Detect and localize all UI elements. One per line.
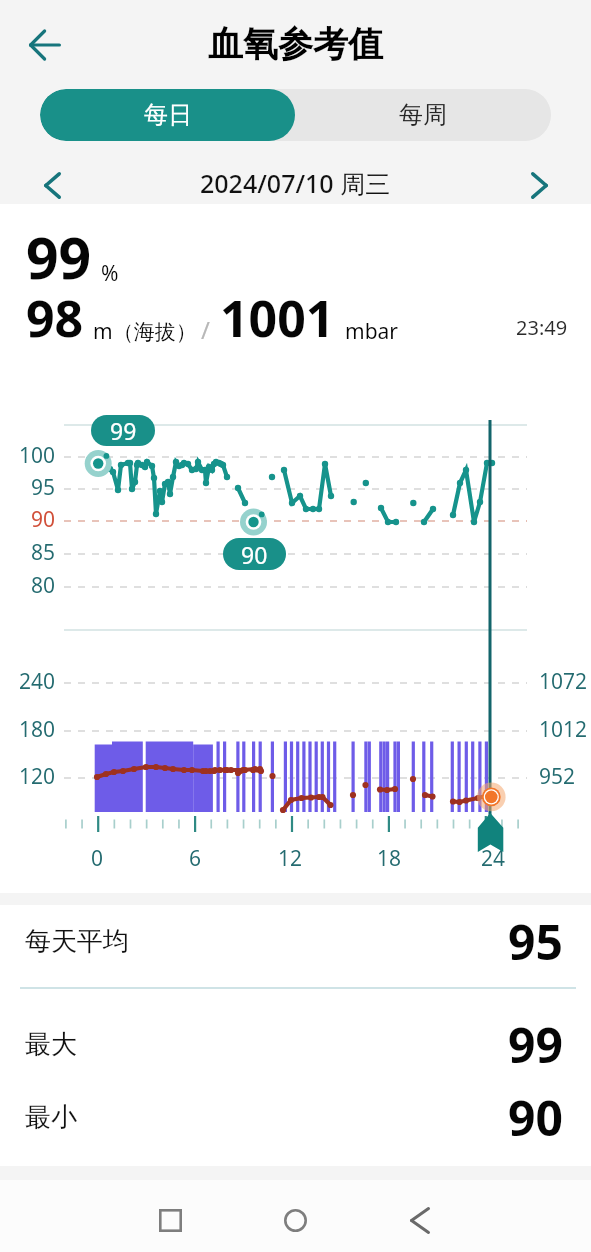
button[interactable]: 每日 (40, 89, 295, 141)
staticText: 24 (481, 844, 506, 873)
staticText: % (101, 259, 119, 288)
button[interactable]: Next day (513, 159, 565, 211)
staticText: 952 (539, 762, 576, 791)
staticText: 95 (31, 473, 56, 502)
button[interactable]: Home (265, 1190, 325, 1250)
staticText: 0 (91, 844, 104, 873)
staticText: 2024/07/10 周三 (200, 166, 391, 200)
button[interactable]: 最小 (0, 1081, 591, 1154)
button[interactable]: Back (13, 13, 77, 77)
staticText: / (201, 313, 210, 346)
staticText: 最小 (25, 1101, 77, 1134)
staticText: 95 (508, 909, 563, 974)
button[interactable]: Back (390, 1190, 450, 1250)
staticText: 120 (19, 762, 56, 791)
staticText: 90 (241, 539, 268, 570)
staticText: 90 (508, 1085, 563, 1150)
staticText: 12 (278, 844, 303, 873)
staticText: 99 (26, 218, 92, 296)
staticText: 6 (189, 844, 202, 873)
staticText: m（海拔） (93, 317, 197, 346)
staticText: 每日 (144, 100, 192, 130)
staticText: 180 (19, 715, 56, 744)
button[interactable]: Previous day (26, 159, 78, 211)
staticText: 99 (110, 415, 137, 446)
staticText: 1012 (539, 715, 588, 744)
staticText: 90 (31, 505, 56, 534)
button[interactable]: 每天平均 (0, 905, 591, 977)
staticText: 100 (19, 441, 56, 470)
staticText: 99 (508, 1012, 563, 1077)
staticText: 85 (31, 538, 56, 567)
button[interactable]: 每周 (295, 89, 551, 141)
staticText: 1001 (220, 284, 335, 352)
staticText: 80 (31, 571, 56, 600)
staticText: 每周 (399, 100, 447, 130)
staticText: 1072 (539, 667, 588, 696)
staticText: 最大 (25, 1028, 77, 1061)
button[interactable]: 最大 (0, 1008, 591, 1081)
staticText: 240 (19, 667, 56, 696)
staticText: 98 (26, 284, 84, 352)
staticText: 23:49 (516, 314, 568, 341)
staticText: 18 (377, 844, 402, 873)
staticText: 血氧参考值 (208, 22, 383, 66)
button[interactable]: Recents (140, 1190, 200, 1250)
staticText: 每天平均 (25, 925, 129, 958)
staticText: mbar (345, 317, 399, 346)
